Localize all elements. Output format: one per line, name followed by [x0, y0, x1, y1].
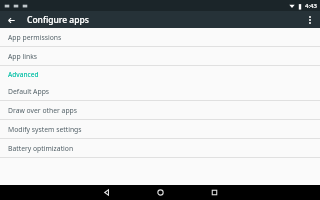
button[interactable]: Back [3, 12, 19, 28]
button[interactable]: Battery optimization [0, 139, 320, 157]
staticText: Default Apps [8, 87, 50, 96]
button[interactable]: Back [89, 185, 123, 200]
staticText: Draw over other apps [8, 106, 77, 115]
button[interactable]: Draw over other apps [0, 101, 320, 119]
button[interactable]: Modify system settings [0, 120, 320, 138]
staticText: Configure apps [27, 14, 89, 26]
button[interactable]: Default Apps [0, 82, 320, 100]
staticText: 4:43 [305, 2, 317, 10]
button[interactable]: More options [302, 12, 318, 28]
staticText: App links [8, 52, 38, 61]
button[interactable]: Recent apps [197, 185, 231, 200]
button[interactable]: Home [143, 185, 177, 200]
staticText: Modify system settings [8, 125, 82, 134]
staticText: Battery optimization [8, 144, 74, 153]
button[interactable]: App links [0, 47, 320, 65]
staticText: Advanced [8, 70, 39, 79]
button[interactable]: App permissions [0, 28, 320, 46]
staticText: App permissions [8, 33, 62, 42]
